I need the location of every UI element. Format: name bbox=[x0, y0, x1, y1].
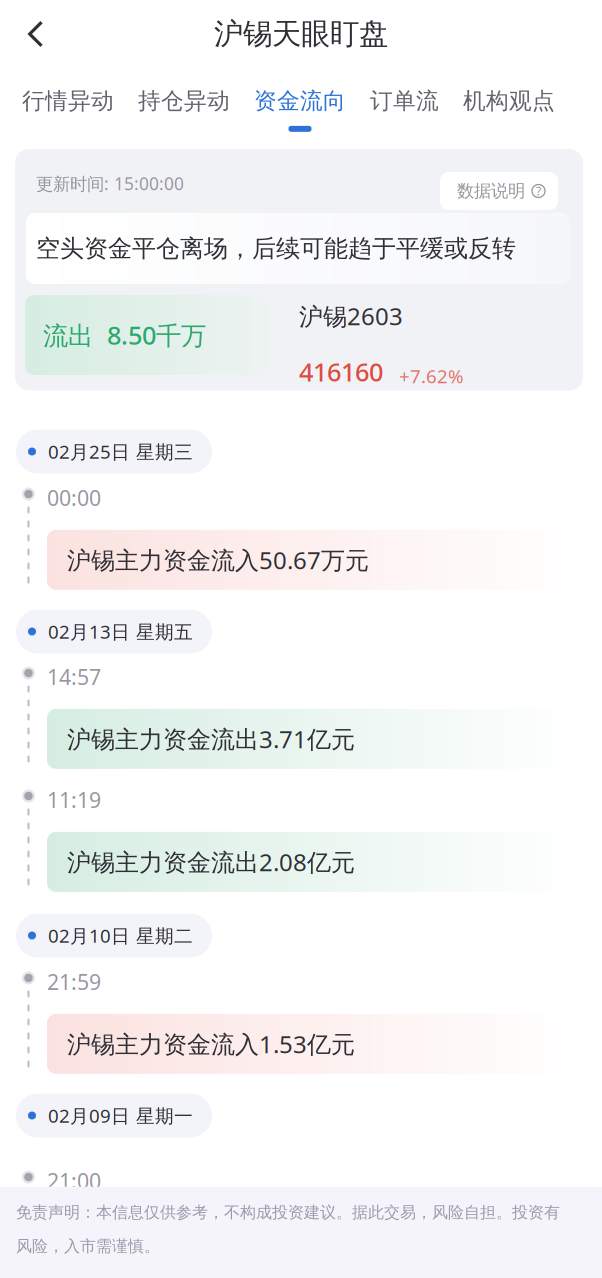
staticText: 沪锡主力资金流入0.88亿元 bbox=[67, 1227, 355, 1259]
staticText: 空头资金平仓离场，后续可能趋于平缓或反转 bbox=[36, 234, 516, 263]
button[interactable]: 返回 bbox=[0, 0, 67, 68]
staticText: 沪锡2603 bbox=[299, 300, 403, 332]
staticText: 免责声明：本信息仅供参考，不构成投资建议。据此交易，风险自担。投资有 bbox=[16, 1203, 560, 1222]
staticText: 订单流 bbox=[370, 87, 439, 115]
button[interactable]: 数据说明 bbox=[440, 172, 558, 210]
staticText: 资金流向 bbox=[254, 87, 346, 115]
staticText: 416160 bbox=[299, 355, 383, 388]
staticText: 21:59 bbox=[47, 967, 101, 996]
staticText: 沪锡主力资金流出2.08亿元 bbox=[67, 846, 355, 878]
button[interactable]: 持仓异动 bbox=[138, 68, 254, 132]
staticText: 21:00 bbox=[47, 1166, 101, 1195]
staticText: 02月25日 星期三 bbox=[48, 439, 193, 464]
staticText: 沪锡主力资金流入50.67万元 bbox=[67, 544, 369, 576]
staticText: 沪锡天眼盯盘 bbox=[214, 16, 388, 52]
staticText: +7.62% bbox=[399, 364, 464, 388]
staticText: 02月13日 星期五 bbox=[48, 619, 193, 644]
staticText: 行情异动 bbox=[22, 87, 114, 115]
staticText: 沪锡主力资金流出3.71亿元 bbox=[67, 723, 355, 755]
staticText: 沪锡主力资金流入1.53亿元 bbox=[67, 1028, 355, 1060]
staticText: 更新时间: 15:00:00 bbox=[36, 172, 184, 195]
staticText: 持仓异动 bbox=[138, 87, 230, 115]
staticText: ? bbox=[536, 183, 541, 199]
staticText: 02月10日 星期二 bbox=[48, 923, 193, 948]
button[interactable]: 资金流向 bbox=[254, 68, 370, 132]
staticText: 机构观点 bbox=[463, 87, 555, 115]
staticText: 00:00 bbox=[47, 483, 101, 512]
button[interactable]: 行情异动 bbox=[22, 68, 138, 132]
staticText: 14:57 bbox=[47, 662, 101, 691]
staticText: 02月09日 星期一 bbox=[48, 1103, 193, 1128]
button[interactable]: 机构观点 bbox=[463, 68, 579, 132]
staticText: 11:19 bbox=[47, 785, 101, 814]
staticText: 流出 8.50千万 bbox=[43, 318, 206, 352]
button[interactable]: 订单流 bbox=[370, 68, 463, 132]
staticText: 风险，入市需谨慎。 bbox=[16, 1236, 160, 1256]
staticText: 数据说明 bbox=[457, 180, 525, 202]
